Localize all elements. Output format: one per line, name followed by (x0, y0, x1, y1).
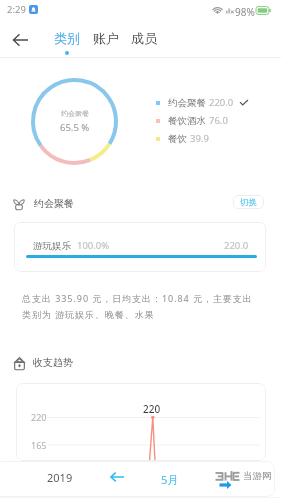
staticText: 65.5 % (60, 121, 90, 134)
staticText: 165 (31, 439, 47, 451)
button[interactable]: 约会聚餐 (156, 96, 248, 109)
staticText: 39.9 (190, 132, 209, 145)
button[interactable]: 游玩娱乐 (14, 222, 266, 272)
staticText: 游玩娱乐 (33, 240, 71, 252)
button[interactable]: 5月 (157, 470, 182, 488)
staticText: 总支出 335.90 元，日均支出：10.84 元，主要支出 (22, 292, 253, 304)
button[interactable]: Back (8, 27, 34, 53)
staticText: 2:29 (7, 3, 26, 16)
staticText: 220 (31, 411, 47, 423)
staticText: 220 (143, 402, 161, 416)
staticText: 98% (235, 5, 255, 19)
staticText: 100.0% (77, 239, 110, 252)
staticText: 类别为 游玩娱乐、晚餐、水果 (22, 308, 155, 320)
staticText: 成员 (131, 30, 157, 46)
staticText: 餐饮 (168, 133, 187, 145)
staticText: 约会聚餐 (34, 197, 74, 210)
staticText: 类别 (54, 30, 80, 46)
button[interactable]: 2019 (44, 468, 76, 486)
button[interactable]: 类别 (54, 30, 80, 55)
staticText: 5月 (161, 472, 179, 487)
button[interactable]: 餐饮酒水 (156, 114, 228, 127)
staticText: 账户 (93, 30, 119, 46)
button[interactable]: 切换 (233, 195, 264, 209)
staticText: 76.0 (209, 114, 228, 127)
button[interactable]: 成员 (131, 30, 157, 46)
staticText: 2019 (47, 470, 73, 485)
button[interactable]: 餐饮 (156, 132, 209, 145)
staticText: 220.0 (209, 96, 234, 109)
staticText: 切换 (240, 197, 257, 208)
staticText: 收支趋势 (33, 356, 73, 369)
staticText: 约会聚餐 (168, 97, 206, 109)
button[interactable]: Previous month (110, 469, 125, 485)
staticText: 220.0 (224, 239, 249, 252)
button[interactable]: 账户 (93, 30, 119, 46)
staticText: 约会聚餐 (61, 109, 89, 118)
staticText: 餐饮酒水 (168, 115, 206, 127)
staticText: 当游网 (243, 470, 272, 482)
